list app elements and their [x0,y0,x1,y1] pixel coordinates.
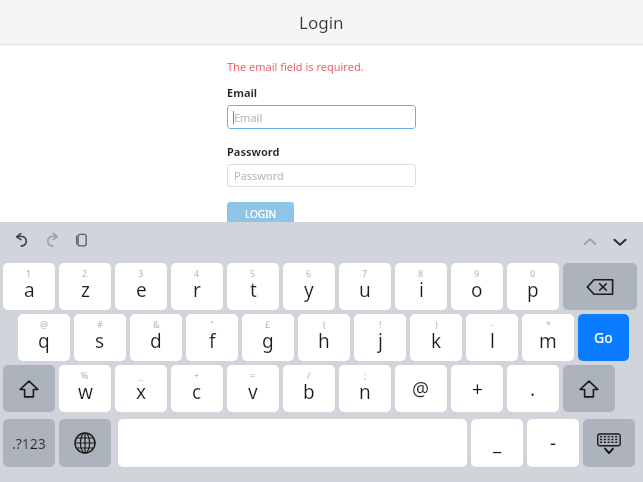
staticText: The email field is required. [227,59,364,74]
staticText: 7 [362,267,368,279]
staticText: Password [227,144,280,159]
button[interactable]: - [527,419,579,467]
button[interactable]: Password [227,164,416,187]
staticText: - [491,318,494,330]
button[interactable]: 9 [451,263,503,310]
staticText: i [419,277,424,303]
staticText: u [359,277,371,303]
staticText: 3 [138,267,144,279]
staticText: 5 [250,267,256,279]
staticText: h [318,328,330,354]
staticText: ; [364,369,367,381]
staticText: & [153,318,160,330]
button[interactable]: Go [578,314,629,361]
staticText: _ [139,369,143,381]
button[interactable]: . [507,365,559,412]
staticText: = [250,369,256,381]
button[interactable]: 4 [171,263,223,310]
button[interactable]: 8 [395,263,447,310]
button[interactable]: Paste [70,228,94,252]
staticText: % [81,369,89,381]
button[interactable]: Switch keyboard [59,419,111,467]
button[interactable]: 1 [3,263,55,310]
button[interactable]: 3 [115,263,167,310]
button[interactable]: LOGIN [227,202,294,226]
button[interactable]: / [283,365,335,412]
button[interactable]: Shift [563,365,615,412]
button[interactable]: Previous field [577,229,603,255]
button[interactable]: + [171,365,223,412]
staticText: Login [299,11,344,34]
button[interactable]: Shift [3,365,55,412]
button[interactable]: # [74,314,126,361]
staticText: + [194,369,200,381]
button[interactable]: ) [410,314,462,361]
button[interactable]: Undo [10,228,34,252]
button[interactable]: Redo [40,228,64,252]
button[interactable]: 0 [507,263,559,310]
button[interactable]: 7 [339,263,391,310]
staticText: x [136,379,147,405]
button[interactable]: " [186,314,238,361]
button[interactable]: 6 [283,263,335,310]
staticText: Email [227,85,258,100]
button[interactable]: ; [339,365,391,412]
button[interactable]: @ [395,365,447,412]
staticText: a [24,277,35,303]
staticText: e [136,277,147,303]
button[interactable]: _ [471,419,523,467]
staticText: 1 [26,267,32,279]
staticText: 6 [306,267,312,279]
button[interactable]: + [451,365,503,412]
button[interactable]: ( [298,314,350,361]
staticText: j [378,328,383,354]
staticText: k [431,328,442,354]
staticText: £ [265,318,271,330]
staticText: _ [493,430,502,456]
staticText: m [539,328,557,354]
staticText: t [250,277,257,303]
staticText: z [81,277,90,303]
button[interactable]: = [227,365,279,412]
staticText: l [490,328,495,354]
staticText: g [262,328,274,354]
staticText: * [546,318,551,330]
staticText: .?123 [12,434,46,453]
button[interactable]: Hide keyboard [583,419,635,467]
button[interactable]: 2 [59,263,111,310]
button[interactable]: Next field [607,229,633,255]
staticText: q [38,328,50,354]
staticText: c [192,379,202,405]
button[interactable]: .?123 [3,419,55,467]
button[interactable]: % [59,365,111,412]
button[interactable]: * [522,314,574,361]
staticText: y [304,277,314,303]
button[interactable]: _ [115,365,167,412]
staticText: 4 [194,267,200,279]
staticText: . [530,376,536,402]
staticText: r [193,277,201,303]
staticText: / [307,369,311,381]
button[interactable]: 5 [227,263,279,310]
button[interactable]: @ [18,314,70,361]
staticText: p [527,277,539,303]
button[interactable]: Backspace [563,263,637,310]
button[interactable]: Email [227,105,416,129]
staticText: 2 [82,267,88,279]
staticText: ! [379,318,382,330]
staticText: @ [40,318,49,330]
staticText: ( [323,318,326,330]
staticText: Password [234,168,284,183]
staticText: 9 [474,267,480,279]
button[interactable]: - [466,314,518,361]
staticText: + [472,376,483,402]
button[interactable]: & [130,314,182,361]
staticText: b [303,379,315,405]
button[interactable]: £ [242,314,294,361]
staticText: f [209,328,216,354]
button[interactable]: ! [354,314,406,361]
staticText: LOGIN [245,207,277,221]
staticText: o [471,277,483,303]
staticText: d [150,328,162,354]
